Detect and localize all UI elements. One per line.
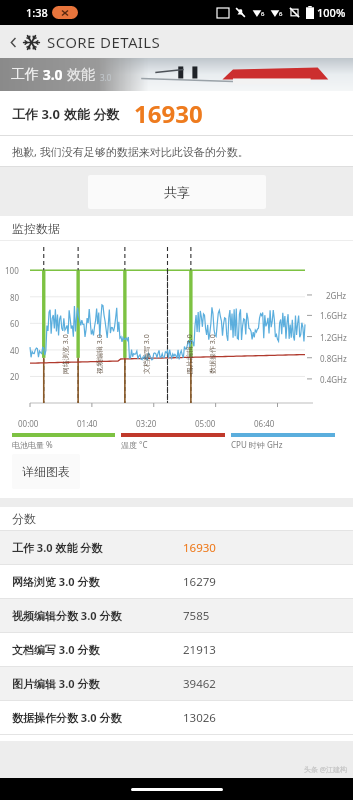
button[interactable]: 视频编辑分数 3.0 分数 — [0, 599, 353, 632]
staticText: 00:00 — [18, 418, 77, 429]
staticText: 2GHz — [326, 290, 347, 301]
staticText: 3.0 — [39, 65, 67, 84]
staticText: 01:40 — [77, 418, 136, 429]
staticText: 网络浏览 3.0 — [61, 334, 71, 374]
staticText: 头条 @江建构 — [304, 765, 348, 775]
button[interactable]: 网络浏览 3.0 分数 — [0, 565, 353, 598]
staticText: 06:40 — [254, 418, 313, 429]
staticText: 抱歉, 我们没有足够的数据来对比此设备的分数。 — [12, 144, 249, 159]
staticText: 数据操作分数 3.0 分数 — [12, 710, 122, 725]
staticText: 0.4GHz — [320, 374, 347, 385]
staticText: 6 — [261, 10, 265, 18]
staticText: 共享 — [164, 184, 190, 200]
staticText: 80 — [10, 292, 20, 303]
staticText: 视频编辑分数 3.0 分数 — [12, 608, 122, 623]
staticText: 详细图表 — [22, 464, 70, 479]
button[interactable]: 图片编辑 3.0 分数 — [0, 667, 353, 700]
button[interactable]: 详细图表 — [12, 454, 80, 489]
staticText: 05:00 — [195, 418, 254, 429]
staticText: CPU 时钟 GHz — [231, 439, 341, 450]
staticText: 3.0 — [38, 105, 64, 123]
staticText: 16930 — [134, 97, 203, 130]
staticText: 网络浏览 3.0 分数 — [12, 574, 100, 589]
staticText: 100% — [317, 5, 346, 20]
staticText: 文档编写 3.0 — [142, 334, 152, 374]
staticText: 60 — [10, 318, 20, 329]
staticText: 39462 — [183, 676, 216, 692]
staticText: 工作 3.0 效能 分数 — [12, 540, 103, 555]
button[interactable]: 共享 — [88, 175, 266, 209]
button[interactable]: 数据操作分数 3.0 分数 — [0, 701, 353, 734]
staticText: 效能 — [67, 66, 95, 84]
staticText: 视频编辑 3.0 — [95, 334, 105, 374]
staticText: 图片编辑 3.0 分数 — [12, 676, 100, 691]
staticText: 效能 分数 — [64, 105, 120, 123]
staticText: 数据操作 3.0 — [208, 334, 218, 374]
staticText: 监控数据 — [12, 221, 60, 236]
staticText: 0.8GHz — [320, 353, 347, 364]
button[interactable]: Back — [3, 32, 23, 52]
staticText: SCORE DETAILS — [47, 32, 161, 52]
staticText: 13026 — [183, 710, 216, 726]
staticText: 16279 — [183, 574, 216, 590]
staticText: 6 — [279, 10, 283, 18]
staticText: 16930 — [183, 540, 216, 556]
staticText: 温度 °C — [121, 439, 231, 450]
staticText: 03:20 — [136, 418, 195, 429]
button[interactable]: 文档编写 3.0 分数 — [0, 633, 353, 666]
staticText: 20 — [10, 371, 20, 382]
staticText: 100 — [5, 265, 19, 276]
staticText: 1:38 — [26, 5, 48, 20]
staticText: 7585 — [183, 608, 210, 624]
staticText: 工作 — [12, 106, 38, 122]
staticText: 工作 — [11, 66, 39, 84]
staticText: 分数 — [12, 511, 36, 526]
staticText: 1.2GHz — [320, 332, 347, 343]
staticText: 21913 — [183, 642, 216, 658]
staticText: 1.6GHz — [320, 310, 347, 321]
staticText: 文档编写 3.0 分数 — [12, 642, 100, 657]
staticText: 电池电量 % — [12, 439, 121, 450]
staticText: 40 — [10, 345, 20, 356]
staticText: 图片编辑 3.0 — [185, 334, 195, 374]
staticText: 3.0 — [100, 72, 112, 83]
button[interactable]: 工作 3.0 效能 分数 — [0, 531, 353, 564]
